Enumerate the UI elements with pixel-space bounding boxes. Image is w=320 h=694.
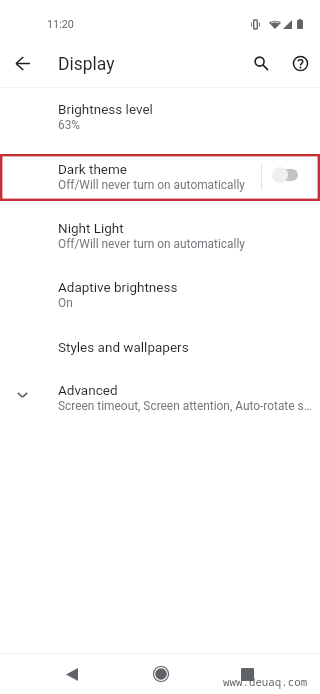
button[interactable]: Back [48, 655, 96, 693]
button[interactable]: Styles and wallpapers [0, 336, 320, 379]
staticText: Styles and wallpapers [58, 339, 189, 355]
staticText: www.deuaq.com [223, 674, 308, 689]
staticText: Dark theme [58, 161, 127, 177]
button[interactable]: Night Light [0, 217, 320, 276]
staticText: On [58, 296, 73, 310]
button[interactable]: Advanced [0, 379, 320, 434]
button[interactable]: Brightness level [0, 98, 320, 157]
staticText: Adaptive brightness [58, 279, 178, 295]
staticText: 63% [58, 118, 81, 132]
button[interactable]: Search [243, 45, 279, 81]
staticText: Off/Will never turn on automatically [58, 178, 245, 192]
button[interactable]: Home [137, 655, 185, 693]
staticText: Display [58, 54, 115, 75]
button[interactable]: Dark theme switch [264, 154, 316, 201]
button[interactable]: Dark theme [0, 154, 261, 201]
button[interactable]: Help [282, 45, 318, 81]
button[interactable]: Recent apps [223, 655, 271, 693]
staticText: Off/Will never turn on automatically [58, 237, 245, 251]
button[interactable]: Adaptive brightness [0, 276, 320, 335]
staticText: 11:20 [47, 18, 74, 31]
button[interactable]: Navigate up [5, 45, 41, 81]
staticText: Screen timeout, Screen attention, Auto-r… [58, 399, 313, 413]
staticText: Night Light [58, 220, 124, 236]
staticText: Advanced [58, 382, 118, 398]
staticText: Brightness level [58, 101, 153, 117]
